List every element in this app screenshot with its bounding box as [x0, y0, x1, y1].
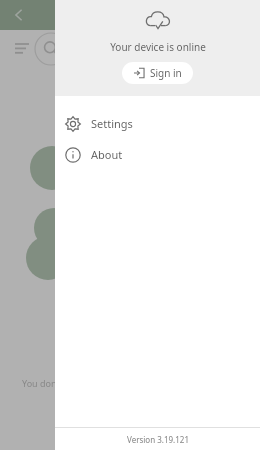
button[interactable]: Settings — [55, 108, 260, 139]
staticText: Settings — [91, 116, 133, 131]
staticText: Your device is online — [110, 40, 206, 54]
button[interactable]: About — [55, 139, 260, 170]
staticText: About — [91, 147, 123, 162]
staticText: You don't have any devices — [22, 377, 136, 389]
staticText: Version 3.19.121 — [127, 434, 189, 445]
staticText: Sign in — [150, 66, 182, 80]
button[interactable]: Sign in — [122, 62, 193, 84]
